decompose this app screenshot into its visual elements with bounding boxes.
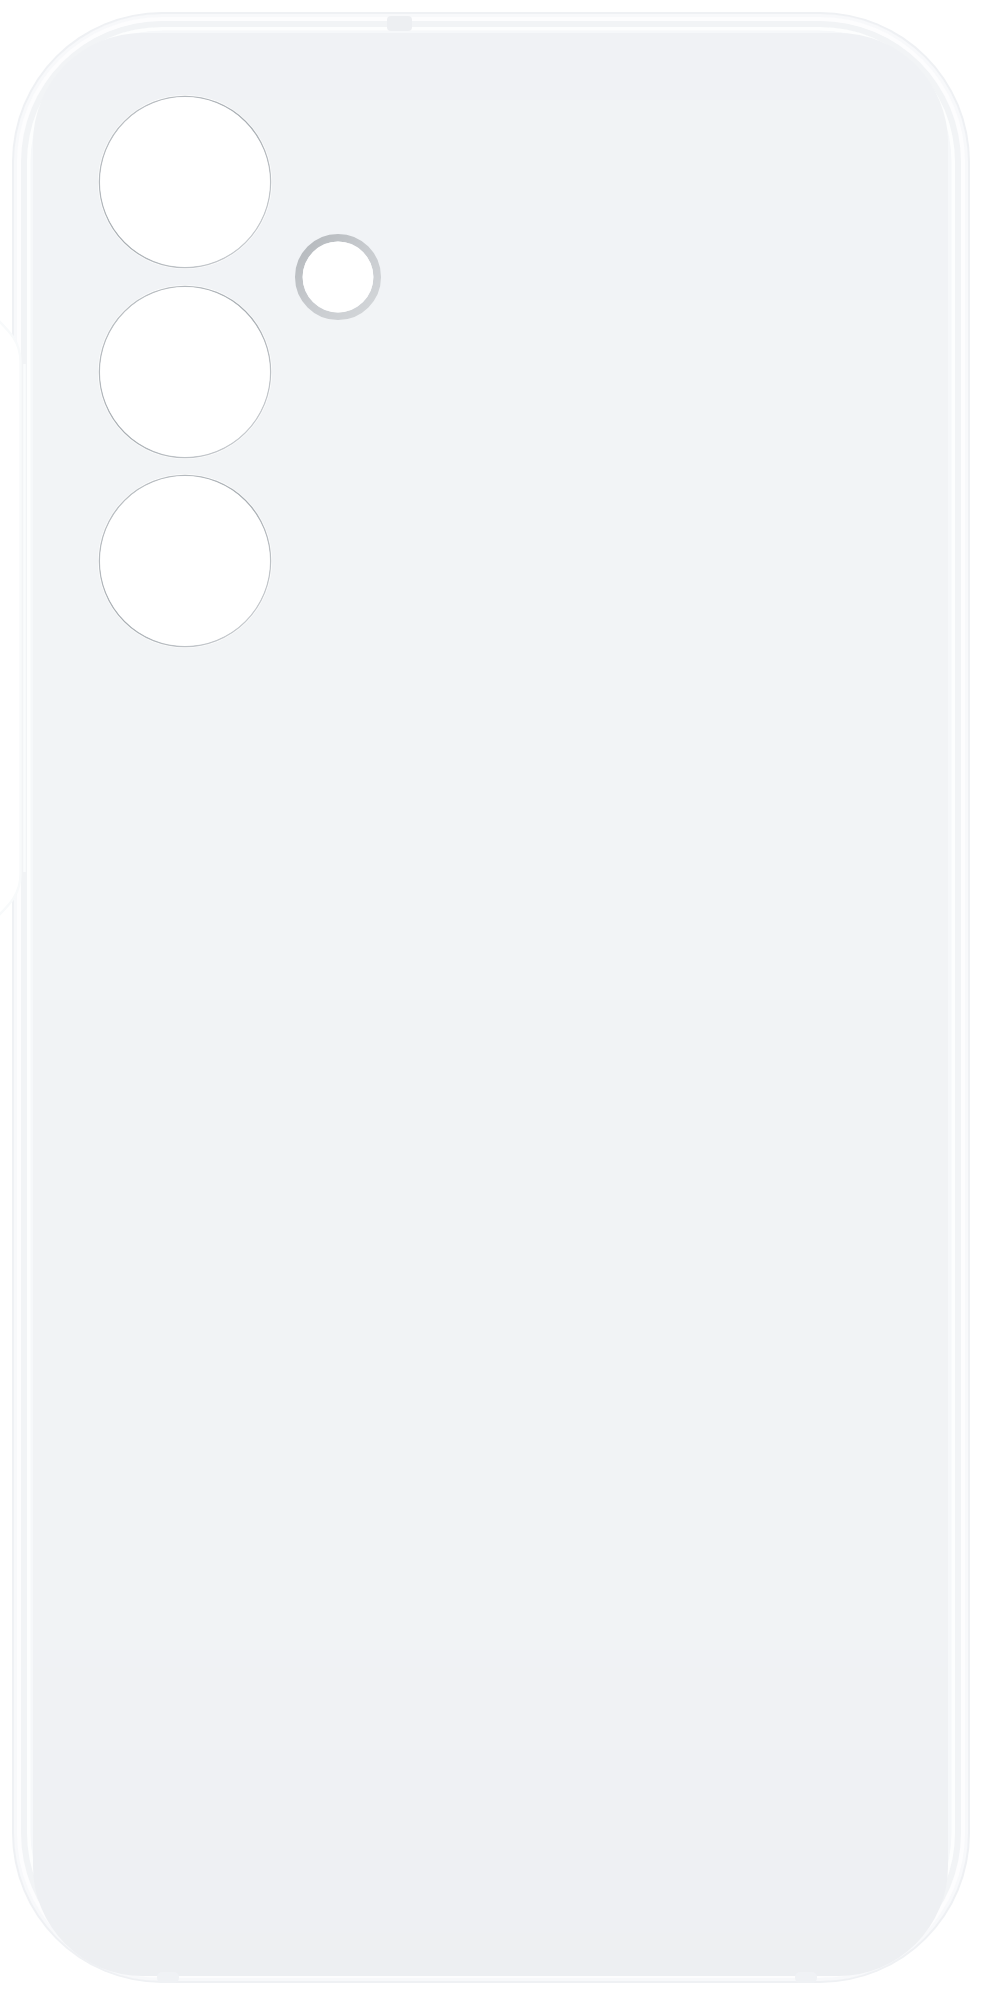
button[interactable]: Clear protective phone case, back view [0,0,981,2000]
